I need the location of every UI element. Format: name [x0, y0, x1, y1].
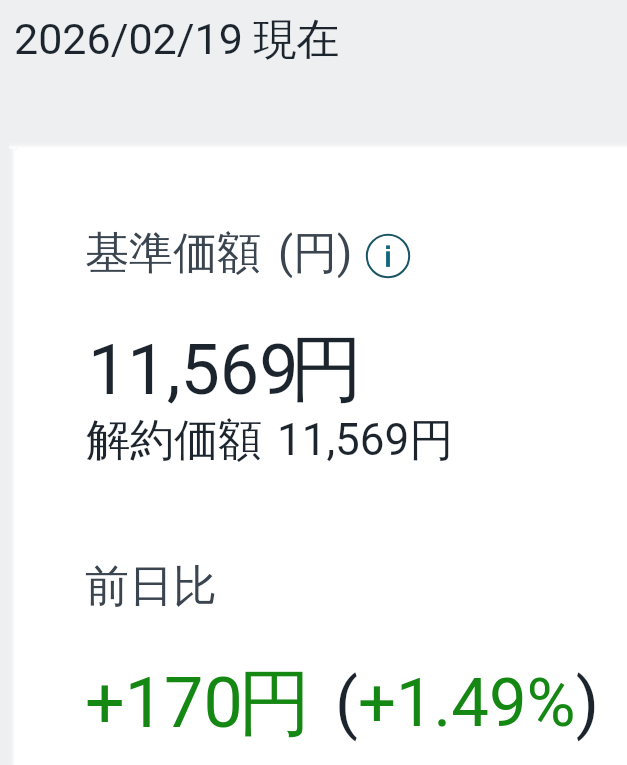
staticText: 基準価額	[85, 226, 261, 281]
staticText: 円	[290, 324, 363, 416]
staticText: (+1.49%)	[335, 664, 599, 743]
staticText: 前日比	[85, 559, 217, 614]
staticText: 解約価額	[86, 413, 262, 468]
staticText: 11,569	[88, 329, 299, 411]
staticText: (円)	[278, 226, 353, 281]
staticText: 2026/02/19 現在	[14, 13, 340, 67]
staticText: 円	[238, 658, 311, 750]
staticText: +170	[85, 662, 243, 744]
staticText: 11,569円	[277, 413, 454, 468]
button[interactable]: Info	[365, 233, 411, 279]
